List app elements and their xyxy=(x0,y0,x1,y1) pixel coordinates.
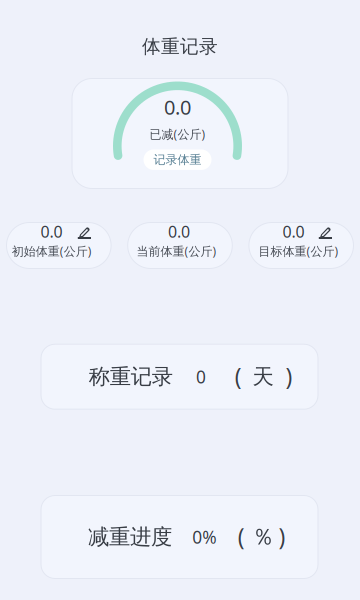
staticText: 减重进度 xyxy=(88,524,172,550)
staticText: 已减(公斤) xyxy=(149,126,205,142)
button[interactable]: 0.0 xyxy=(249,222,353,268)
staticText: ) xyxy=(285,361,292,391)
staticText: 天 xyxy=(252,364,273,390)
staticText: ) xyxy=(278,521,285,551)
staticText: 体重记录 xyxy=(142,35,218,58)
button[interactable]: 称重记录 xyxy=(41,344,318,409)
button[interactable]: 减重进度 xyxy=(41,495,318,578)
staticText: 目标体重(公斤) xyxy=(258,243,338,259)
button[interactable]: 0.0 xyxy=(128,222,232,268)
staticText: 0.0 xyxy=(164,94,191,120)
staticText: 0.0 xyxy=(282,221,304,242)
staticText: 当前体重(公斤) xyxy=(136,243,216,259)
staticText: 称重记录 xyxy=(89,364,173,390)
staticText: ％ xyxy=(252,523,275,551)
staticText: ( xyxy=(235,361,242,391)
staticText: 记录体重 xyxy=(153,152,201,167)
button[interactable]: 记录体重 xyxy=(143,149,211,170)
staticText: 0% xyxy=(192,525,216,548)
staticText: ( xyxy=(238,521,245,551)
staticText: 0.0 xyxy=(40,221,62,242)
button[interactable]: 0.0 xyxy=(6,222,111,268)
staticText: 0 xyxy=(196,365,206,388)
staticText: 初始体重(公斤) xyxy=(12,243,92,259)
staticText: 0.0 xyxy=(168,221,190,242)
